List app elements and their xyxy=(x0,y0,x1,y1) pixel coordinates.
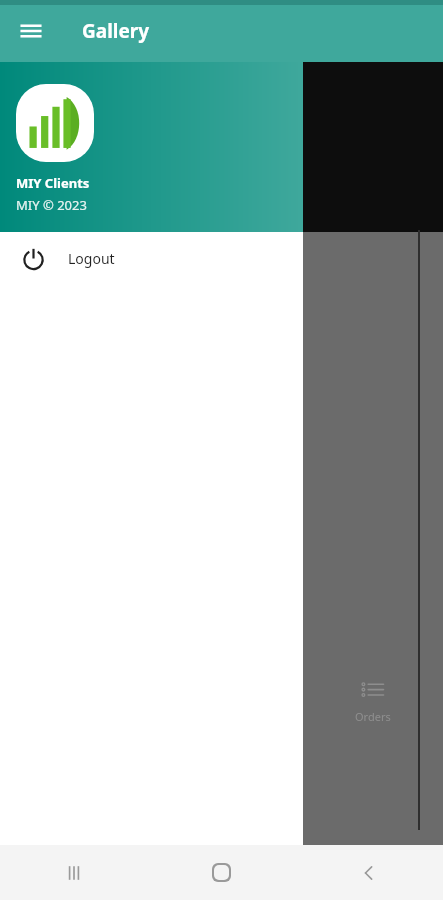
staticText: MIY Clients xyxy=(16,174,90,192)
button[interactable]: Orders xyxy=(303,667,443,739)
button[interactable]: Recent apps xyxy=(0,845,147,900)
staticText: Logout xyxy=(68,249,115,268)
button[interactable]: Home xyxy=(147,845,295,900)
other: Orders xyxy=(358,677,388,707)
button[interactable]: Logout xyxy=(0,232,303,284)
staticText: Orders xyxy=(355,709,391,724)
staticText: MIY © 2023 xyxy=(16,196,87,214)
staticText: Gallery xyxy=(82,18,150,44)
button[interactable]: Back xyxy=(295,845,443,900)
button[interactable]: Open navigation drawer xyxy=(8,8,54,54)
